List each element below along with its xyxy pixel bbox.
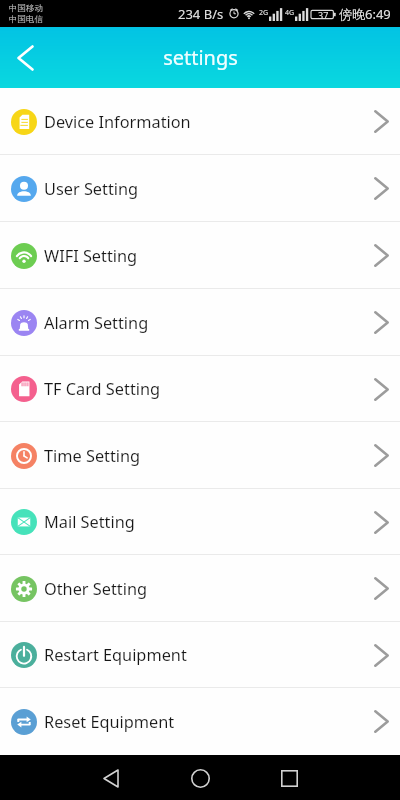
- staticText: 2G: [259, 8, 269, 18]
- button[interactable]: Mail Setting: [0, 489, 400, 555]
- button[interactable]: Restart Equipment: [0, 622, 400, 688]
- staticText: 4G: [285, 8, 295, 18]
- button[interactable]: Other Setting: [0, 555, 400, 622]
- button[interactable]: Device Information: [0, 88, 400, 155]
- staticText: 中国电信: [9, 14, 43, 25]
- button[interactable]: Time Setting: [0, 422, 400, 489]
- button[interactable]: Recents: [267, 756, 311, 800]
- staticText: TF Card Setting: [44, 378, 161, 400]
- staticText: User Setting: [44, 178, 139, 200]
- button[interactable]: TF Card Setting: [0, 356, 400, 422]
- staticText: Other Setting: [44, 578, 148, 600]
- staticText: 中国移动: [9, 3, 43, 14]
- staticText: Time Setting: [44, 445, 141, 467]
- staticText: WIFI Setting: [44, 245, 138, 267]
- button[interactable]: Back: [89, 756, 133, 800]
- staticText: settings: [163, 44, 238, 71]
- button[interactable]: Back: [0, 27, 51, 88]
- staticText: Alarm Setting: [44, 312, 149, 334]
- button[interactable]: WIFI Setting: [0, 222, 400, 289]
- button[interactable]: User Setting: [0, 155, 400, 222]
- staticText: 234 B/s: [178, 5, 224, 23]
- staticText: Device Information: [44, 111, 191, 133]
- button[interactable]: Home: [178, 756, 222, 800]
- staticText: Restart Equipment: [44, 644, 187, 666]
- staticText: 37: [318, 9, 329, 21]
- staticText: Reset Equipment: [44, 711, 175, 733]
- staticText: Mail Setting: [44, 511, 135, 533]
- button[interactable]: Reset Equipment: [0, 688, 400, 755]
- button[interactable]: Alarm Setting: [0, 289, 400, 356]
- staticText: 傍晚6:49: [339, 5, 391, 23]
